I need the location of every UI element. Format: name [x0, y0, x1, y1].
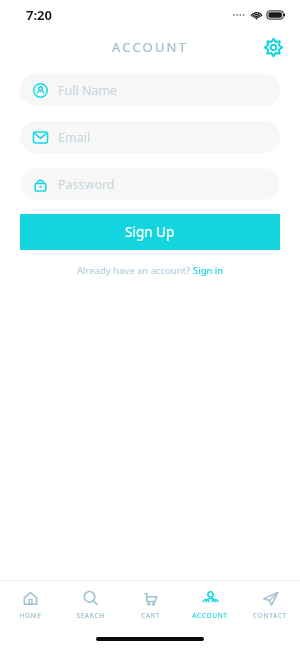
staticText: Sign in: [193, 264, 224, 277]
button[interactable]: SEARCH: [60, 581, 120, 629]
button[interactable]: Full Name: [20, 74, 280, 106]
button[interactable]: Password: [20, 168, 280, 200]
button[interactable]: CART: [120, 581, 180, 629]
staticText: SEARCH: [76, 611, 105, 620]
button[interactable]: Sign Up: [20, 214, 280, 250]
button[interactable]: Email: [20, 121, 280, 153]
staticText: CART: [141, 611, 160, 620]
button[interactable]: ACCOUNT: [180, 581, 240, 629]
staticText: HOME: [19, 611, 42, 620]
staticText: Already have an account?: [77, 264, 193, 277]
staticText: Password: [58, 176, 115, 193]
staticText: Email: [58, 129, 91, 146]
button[interactable]: HOME: [0, 581, 60, 629]
staticText: 7:20: [26, 6, 52, 24]
staticText: ACCOUNT: [192, 611, 228, 620]
button[interactable]: CONTACT: [240, 581, 300, 629]
button[interactable]: Settings: [258, 32, 288, 62]
button[interactable]: Sign in: [193, 264, 224, 277]
staticText: CONTACT: [253, 611, 287, 620]
staticText: ACCOUNT: [112, 38, 189, 56]
staticText: Sign Up: [125, 223, 175, 241]
staticText: Full Name: [58, 82, 118, 99]
